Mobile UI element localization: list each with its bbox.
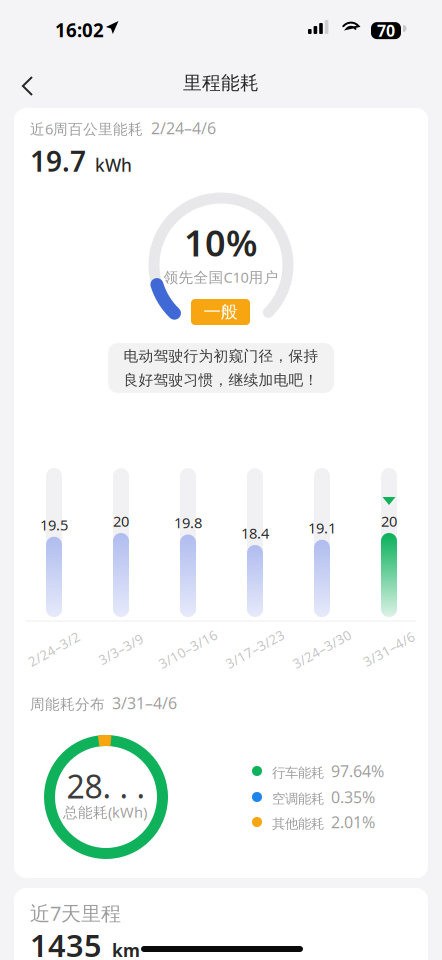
staticText: 16:02 [55,18,104,42]
staticText: 19.8 [174,513,202,532]
staticText: 空调能耗 [272,791,324,807]
staticText: 2/24–4/6 [151,117,216,139]
staticText: kWh [95,154,132,177]
staticText: 总能耗(kWh) [63,802,147,822]
staticText: 97.64% [331,760,384,782]
staticText: 电动驾驶行为初窥门径，保持 [123,347,318,365]
staticText: 3/10–3/16 [155,640,220,658]
staticText: 良好驾驶习惯，继续加电吧！ [123,371,318,389]
staticText: 其他能耗 [272,816,324,832]
staticText: 3/31–4/6 [112,692,177,714]
staticText: 10% [184,219,258,266]
staticText: 3/24–3/30 [289,640,354,658]
staticText: 0.35% [331,786,375,808]
staticText: km [112,939,140,960]
staticText: 18.4 [241,523,269,543]
staticText: 2/24–3/2 [25,640,82,658]
button[interactable]: 一般 [191,299,250,325]
staticText: 28. . . [66,765,145,807]
staticText: 70 [377,20,395,41]
staticText: 19.7 [30,142,86,180]
staticText: 行车能耗 [272,765,324,781]
staticText: 近7天里程 [30,900,121,926]
staticText: 3/17–3/23 [222,640,287,658]
staticText: 领先全国C10用户 [163,267,278,287]
staticText: 3/31–4/6 [360,640,417,658]
staticText: 19.1 [308,518,336,537]
staticText: 2.01% [331,811,375,833]
staticText: 1435 [30,925,102,960]
staticText: 周能耗分布 [30,695,105,713]
staticText: 20 [113,511,129,531]
staticText: 里程能耗 [183,71,259,94]
button[interactable]: Back [8,63,47,109]
staticText: 19.5 [40,515,68,534]
staticText: 20 [381,511,397,531]
staticText: 一般 [203,301,237,323]
staticText: 3/3–3/9 [96,640,145,658]
staticText: 近6周百公里能耗 [30,119,143,138]
